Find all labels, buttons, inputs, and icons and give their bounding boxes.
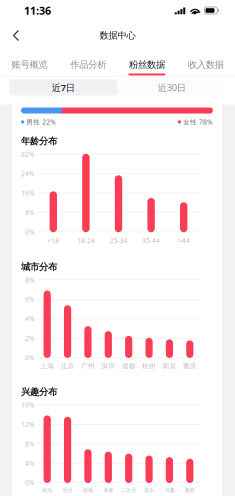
button[interactable]: 近30日 bbox=[117, 79, 226, 95]
staticText: 16% bbox=[21, 189, 35, 197]
staticText: 6% bbox=[25, 295, 35, 304]
button[interactable]: 返回 bbox=[3, 22, 29, 48]
staticText: 南京 bbox=[162, 362, 176, 370]
staticText: 近30日 bbox=[158, 81, 186, 94]
staticText: 女性 78% bbox=[181, 117, 213, 126]
staticText: 男性 22% bbox=[24, 117, 56, 126]
staticText: 8% bbox=[25, 208, 35, 217]
staticText: 城市分布 bbox=[21, 261, 57, 273]
button[interactable]: 账号概览 bbox=[0, 50, 59, 76]
button[interactable]: 收入数据 bbox=[176, 50, 235, 76]
staticText: 11:36 bbox=[24, 3, 51, 18]
staticText: 年龄分布 bbox=[21, 135, 57, 147]
staticText: 32% bbox=[21, 150, 35, 159]
staticText: 4% bbox=[25, 314, 35, 323]
staticText: 12% bbox=[21, 420, 35, 429]
staticText: 24% bbox=[21, 169, 35, 178]
staticText: 近7日 bbox=[52, 81, 75, 94]
staticText: 兴趣分布 bbox=[21, 386, 57, 398]
staticText: 娱乐 bbox=[42, 487, 52, 494]
staticText: 8% bbox=[25, 275, 35, 284]
staticText: 生活 bbox=[63, 487, 73, 494]
staticText: 杭州 bbox=[142, 362, 156, 370]
staticText: 作品分析 bbox=[70, 59, 106, 70]
staticText: 16% bbox=[21, 400, 35, 409]
staticText: 重庆 bbox=[183, 362, 197, 370]
staticText: 35-44 bbox=[142, 236, 160, 245]
staticText: 广州 bbox=[81, 362, 95, 370]
staticText: 25-34 bbox=[109, 236, 127, 245]
staticText: 二次元 bbox=[121, 487, 136, 494]
button[interactable]: 粉丝数据 bbox=[117, 50, 176, 76]
staticText: 收入数据 bbox=[188, 59, 224, 70]
staticText: 8% bbox=[25, 439, 35, 448]
staticText: 0% bbox=[25, 227, 35, 236]
button[interactable]: 作品分析 bbox=[59, 50, 118, 76]
staticText: 2% bbox=[25, 334, 35, 343]
staticText: 深圳 bbox=[101, 362, 115, 370]
staticText: 4% bbox=[25, 459, 35, 468]
staticText: 数据中心 bbox=[99, 30, 135, 41]
staticText: 教育 bbox=[185, 487, 195, 494]
staticText: 18-24 bbox=[77, 236, 95, 245]
staticText: 影视 bbox=[83, 487, 93, 494]
staticText: 音乐 bbox=[144, 487, 154, 494]
staticText: <18 bbox=[47, 236, 59, 245]
staticText: 成都 bbox=[122, 362, 136, 370]
staticText: 北京 bbox=[61, 362, 75, 370]
staticText: 0% bbox=[25, 478, 35, 487]
staticText: 粉丝数据 bbox=[129, 59, 165, 70]
staticText: 美食 bbox=[103, 487, 113, 494]
button[interactable]: 近7日 bbox=[9, 79, 117, 95]
staticText: >44 bbox=[178, 236, 190, 245]
staticText: 0% bbox=[25, 353, 35, 362]
staticText: 兴趣 bbox=[164, 487, 174, 494]
staticText: 账号概览 bbox=[11, 59, 47, 70]
staticText: 上海 bbox=[40, 362, 54, 370]
